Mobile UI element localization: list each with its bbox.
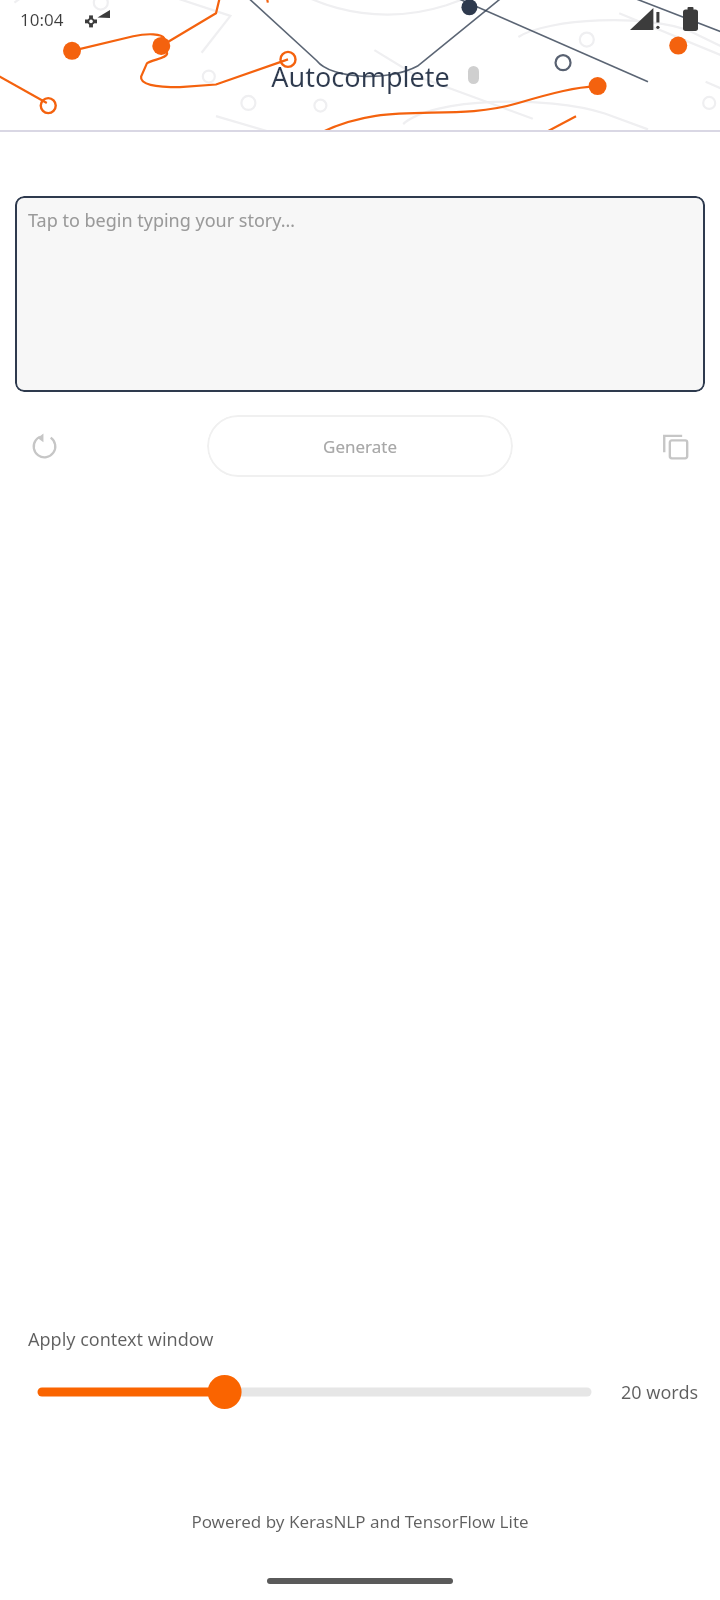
staticText: Powered by KerasNLP and TensorFlow Lite [0, 1510, 720, 1533]
button[interactable] [22, 1372, 607, 1412]
staticText: Apply context window [28, 1327, 214, 1352]
staticText: 10:04 [20, 8, 64, 31]
staticText: Generate [323, 435, 398, 458]
button[interactable]: Reset [20, 422, 68, 470]
button[interactable]: Generate [207, 415, 513, 477]
staticText: 20 words [621, 1380, 699, 1405]
staticText: Tap to begin typing your story… [28, 208, 295, 233]
staticText: Autocomplete [271, 58, 450, 95]
button[interactable]: Tap to begin typing your story… [15, 196, 705, 392]
button[interactable]: Copy [652, 422, 700, 470]
